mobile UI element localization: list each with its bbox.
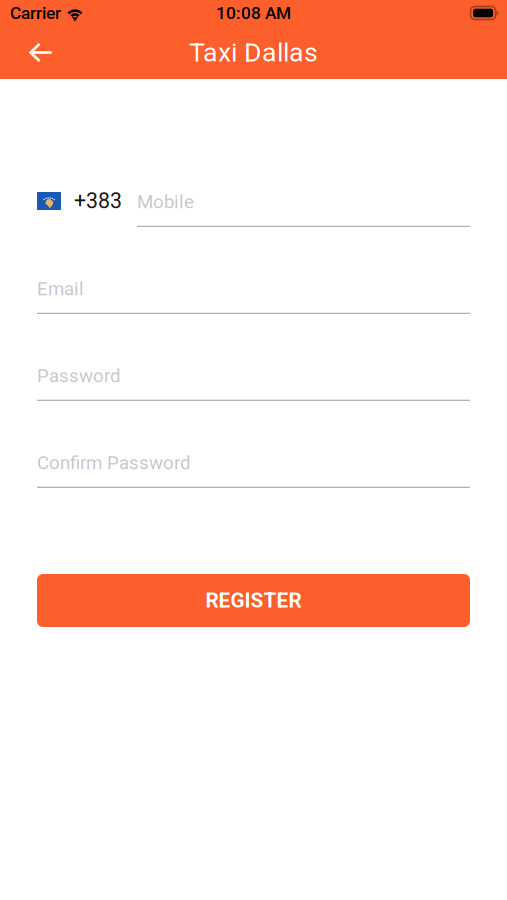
staticText: +383	[74, 188, 122, 213]
staticText: Mobile	[137, 191, 194, 213]
staticText: Taxi Dallas	[189, 37, 318, 68]
staticText: Carrier	[10, 3, 61, 23]
button[interactable]: Country code +383	[37, 191, 137, 227]
staticText: REGISTER	[205, 588, 301, 613]
staticText: 10:08 AM	[216, 3, 291, 23]
staticText: Password	[37, 365, 121, 387]
staticText: Confirm Password	[37, 452, 191, 474]
staticText: Email	[37, 278, 84, 300]
button[interactable]: Back	[19, 30, 63, 74]
button[interactable]: REGISTER	[37, 574, 470, 627]
